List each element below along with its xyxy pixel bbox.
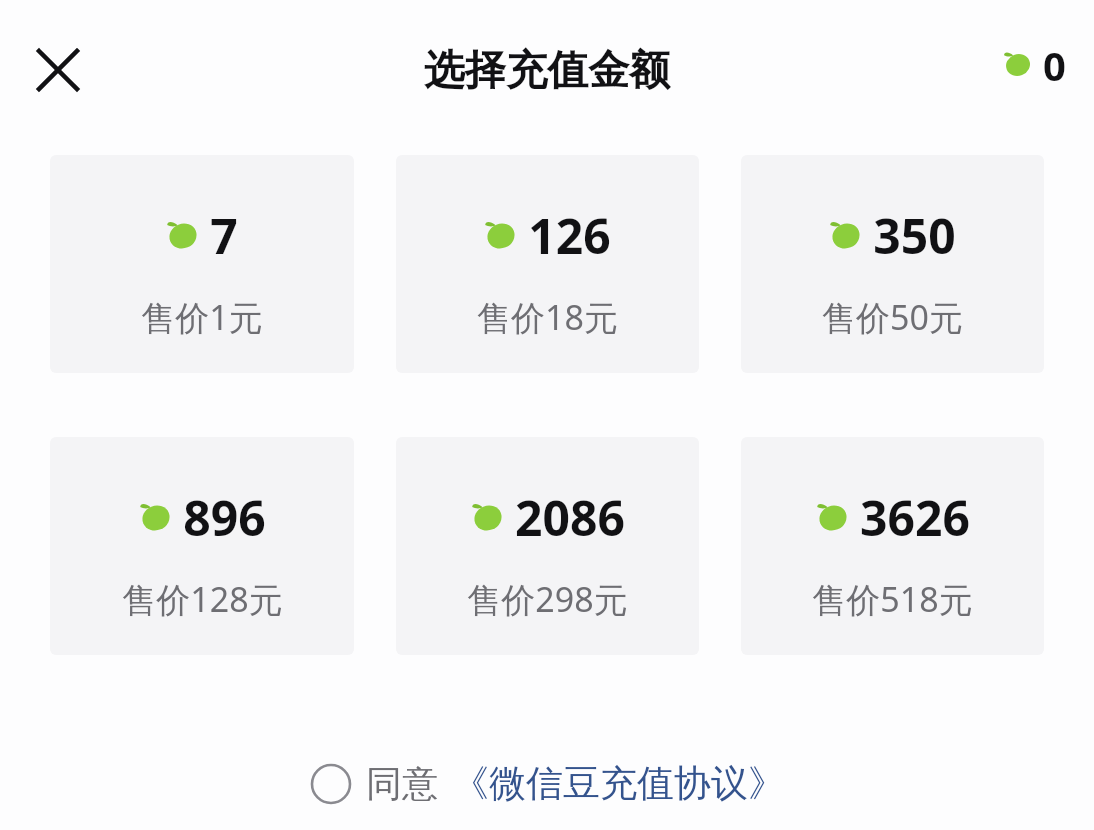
staticText: 售价1元 — [141, 294, 263, 340]
staticText: 售价18元 — [477, 294, 618, 340]
staticText: 售价128元 — [122, 576, 283, 622]
button[interactable]: 《微信豆充值协议》 — [452, 760, 785, 807]
staticText: 售价518元 — [812, 576, 973, 622]
staticText: 售价298元 — [467, 576, 628, 622]
button[interactable]: 7 — [50, 155, 354, 373]
staticText: 3626 — [860, 485, 970, 550]
staticText: 售价50元 — [822, 294, 963, 340]
button[interactable]: 同意 — [310, 760, 785, 807]
staticText: 选择充值金额 — [424, 45, 670, 97]
button[interactable]: Close — [22, 34, 94, 106]
staticText: 《微信豆充值协议》 — [452, 760, 785, 807]
button[interactable]: 126 — [396, 155, 699, 373]
staticText: 126 — [528, 203, 611, 268]
button[interactable]: 350 — [741, 155, 1044, 373]
staticText: 同意 — [366, 761, 438, 806]
staticText: 350 — [873, 203, 956, 268]
staticText: 0 — [1043, 38, 1066, 92]
button[interactable]: 896 — [50, 437, 354, 655]
staticText: 2086 — [515, 485, 625, 550]
button[interactable]: 2086 — [396, 437, 699, 655]
button[interactable]: 3626 — [741, 437, 1044, 655]
staticText: 7 — [210, 203, 238, 268]
button[interactable]: 0 — [1003, 38, 1066, 92]
staticText: 896 — [183, 485, 266, 550]
